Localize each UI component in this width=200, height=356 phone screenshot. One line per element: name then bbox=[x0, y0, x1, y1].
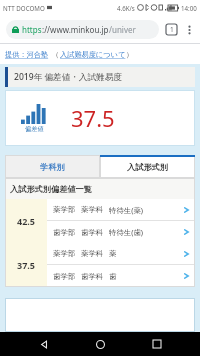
staticText: 4.6K/s bbox=[117, 4, 135, 12]
staticText: 2019年 偏差値・入試難易度 bbox=[14, 71, 122, 83]
button[interactable]: 歯学部 bbox=[47, 265, 195, 287]
staticText: 42.5 bbox=[17, 215, 35, 227]
staticText: 歯学部 bbox=[53, 228, 76, 237]
button[interactable]: 歯学部 bbox=[47, 221, 195, 243]
button[interactable]: 薬学部 bbox=[47, 199, 195, 220]
staticText: 入試形式別 bbox=[127, 162, 168, 172]
button[interactable]: 薬学部 bbox=[47, 243, 195, 264]
staticText: 歯学科 bbox=[81, 228, 104, 237]
staticText: 薬学科 bbox=[81, 249, 104, 258]
staticText: NTT DOCOMO bbox=[3, 4, 45, 12]
button[interactable]: 学科別 bbox=[5, 155, 100, 178]
staticText: 特待生(歯) bbox=[109, 227, 143, 237]
staticText: /univer bbox=[109, 24, 136, 35]
staticText: 薬 bbox=[109, 249, 117, 258]
staticText: 学科別 bbox=[40, 162, 65, 172]
staticText: 入試形式別 bbox=[10, 184, 51, 194]
staticText: 1 bbox=[170, 25, 174, 34]
staticText: 特待生(薬) bbox=[109, 205, 143, 215]
button[interactable]: 提供：河合塾 bbox=[5, 50, 49, 59]
staticText: 偏差値 bbox=[25, 125, 44, 133]
button[interactable]: Recent apps bbox=[144, 332, 170, 356]
staticText: 歯学科 bbox=[81, 272, 104, 281]
button[interactable]: 入試形式別 bbox=[100, 155, 195, 178]
button[interactable]: https bbox=[6, 20, 159, 39]
staticText: 薬学科 bbox=[81, 205, 104, 214]
staticText: 偏差値一覧 bbox=[51, 184, 92, 194]
staticText: 歯学部 bbox=[53, 272, 76, 281]
staticText: 薬学部 bbox=[53, 249, 76, 258]
button[interactable]: Home bbox=[87, 332, 113, 356]
staticText: 薬学部 bbox=[53, 205, 76, 214]
button[interactable]: 入試難易度について bbox=[60, 50, 126, 59]
staticText: https bbox=[22, 24, 42, 35]
button[interactable]: Back bbox=[31, 332, 57, 356]
staticText: 37.5 bbox=[71, 103, 115, 133]
staticText: （ bbox=[52, 50, 60, 59]
staticText: ） bbox=[126, 50, 134, 59]
staticText: ://www.minkou.jp bbox=[42, 24, 109, 35]
button[interactable]: Tabs bbox=[165, 23, 178, 36]
button[interactable]: More options bbox=[183, 23, 196, 36]
staticText: 37.5 bbox=[17, 259, 35, 271]
staticText: 14:00 bbox=[181, 4, 197, 12]
staticText: 歯 bbox=[109, 272, 117, 281]
